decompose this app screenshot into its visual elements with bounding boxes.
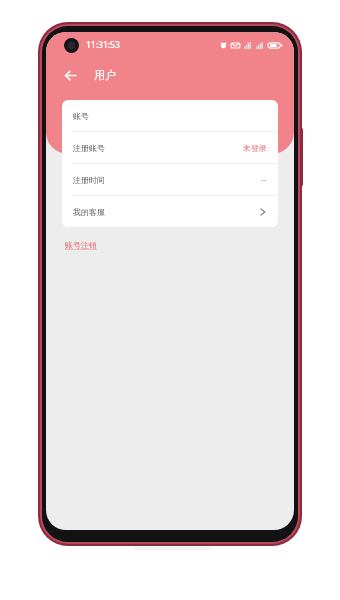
staticText: 我的客服 bbox=[73, 207, 105, 217]
button[interactable]: 账号注销 bbox=[63, 237, 99, 253]
staticText: 注册时间 bbox=[73, 175, 105, 185]
staticText: 账号注销 bbox=[65, 240, 97, 250]
staticText: 注册账号 bbox=[73, 143, 105, 153]
button[interactable]: 我的客服 bbox=[62, 196, 278, 227]
button[interactable]: 注册账号 bbox=[62, 132, 278, 163]
staticText: -- bbox=[261, 174, 267, 185]
staticText: 未登录 bbox=[243, 143, 267, 153]
button[interactable]: 注册时间 bbox=[62, 164, 278, 195]
staticText: 11:31:53 bbox=[86, 39, 120, 51]
staticText: 用户 bbox=[94, 68, 116, 82]
staticText: 账号 bbox=[73, 111, 89, 121]
button[interactable]: Back bbox=[56, 61, 84, 89]
